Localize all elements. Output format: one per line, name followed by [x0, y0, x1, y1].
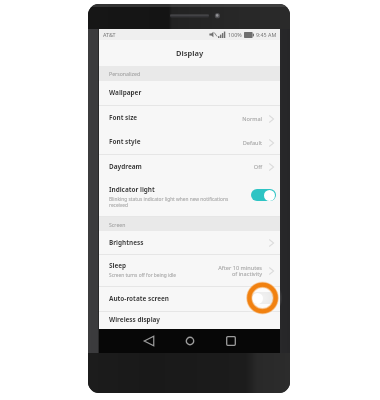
button[interactable]: Daydream — [99, 155, 280, 179]
button[interactable]: Wireless display — [99, 312, 280, 329]
staticText: Default — [242, 139, 262, 147]
staticText: Font size — [109, 113, 138, 122]
staticText: After 10 minutes of inactivity — [218, 264, 262, 278]
button[interactable]: Auto-rotate screen — [99, 287, 280, 312]
staticText: Wallpaper — [109, 88, 142, 97]
staticText: Font style — [109, 137, 141, 146]
button[interactable]: Font style — [99, 130, 280, 155]
staticText: Blinking status indicator light when new… — [109, 196, 235, 208]
button[interactable]: Font size — [99, 106, 280, 131]
button[interactable]: Recent apps — [219, 329, 243, 353]
button[interactable]: Wallpaper — [99, 81, 280, 106]
button[interactable]: Auto-rotate screen — [251, 292, 276, 304]
staticText: Brightness — [109, 238, 144, 247]
staticText: Screen — [109, 221, 126, 228]
button[interactable]: Home — [178, 329, 202, 353]
staticText: Wireless display — [109, 315, 161, 324]
staticText: 100% — [228, 31, 242, 38]
staticText: AT&T — [103, 31, 116, 38]
staticText: Screen turns off for being idle — [109, 272, 177, 279]
button[interactable]: Indicator light — [99, 178, 280, 217]
button[interactable]: Indicator light — [251, 189, 276, 201]
staticText: 9:45 AM — [256, 31, 277, 38]
staticText: Display — [176, 48, 204, 58]
staticText: Off — [253, 163, 262, 171]
staticText: Auto-rotate screen — [109, 294, 169, 303]
button[interactable]: Back — [137, 329, 161, 353]
staticText: Daydream — [109, 162, 142, 171]
staticText: Sleep — [109, 261, 127, 270]
button[interactable]: Sleep — [99, 255, 280, 287]
staticText: Personalized — [109, 70, 141, 77]
staticText: Indicator light — [109, 185, 155, 194]
button[interactable]: Brightness — [99, 231, 280, 255]
staticText: Normal — [242, 115, 262, 123]
